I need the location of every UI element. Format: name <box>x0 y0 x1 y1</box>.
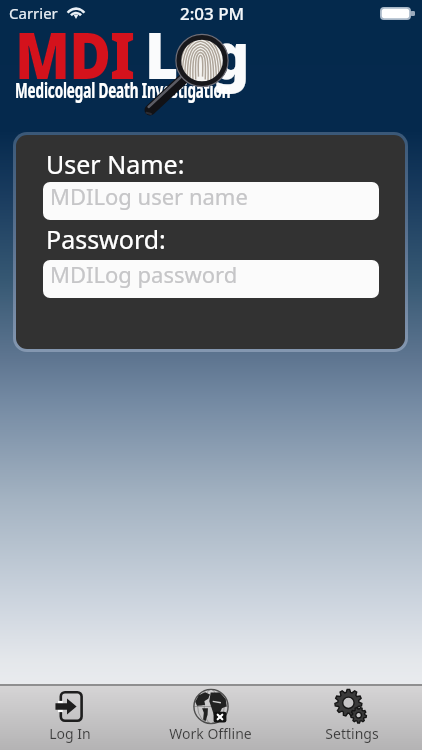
staticText: Password: <box>46 222 166 256</box>
button[interactable]: Settings <box>281 686 422 750</box>
button[interactable]: Log In <box>0 686 140 750</box>
button[interactable]: Work Offline <box>140 686 281 750</box>
staticText: User Name: <box>46 147 185 181</box>
button[interactable]: MDILog user name <box>43 182 379 220</box>
staticText: Medicolegal Death Investigation <box>15 74 231 104</box>
staticText: Work Offline <box>169 724 252 743</box>
staticText: Carrier <box>9 3 58 23</box>
staticText: Settings <box>325 724 379 743</box>
staticText: MDILog password <box>50 260 238 289</box>
button[interactable]: MDILog password <box>43 260 379 298</box>
staticText: Log <box>145 11 249 98</box>
staticText: MDI <box>15 11 135 98</box>
staticText: Log In <box>49 724 91 743</box>
staticText: MDILog user name <box>50 182 248 211</box>
staticText: 2:03 PM <box>180 2 245 22</box>
